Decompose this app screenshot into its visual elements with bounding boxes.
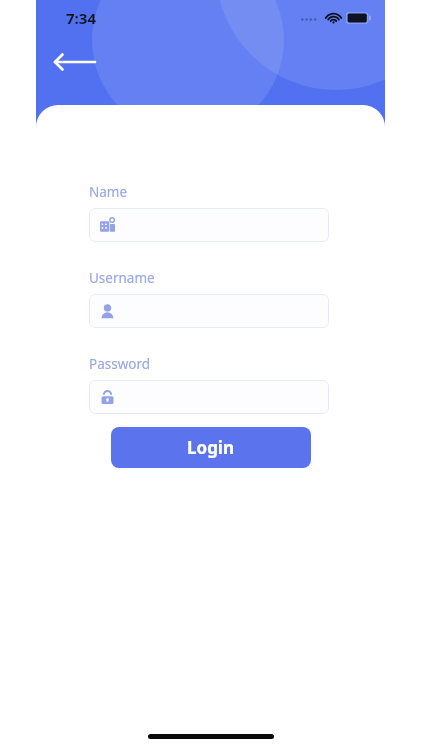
button[interactable] (89, 380, 329, 414)
button[interactable] (89, 208, 329, 242)
staticText: Name (89, 183, 128, 201)
button[interactable] (89, 294, 329, 328)
button[interactable]: Login (111, 427, 311, 468)
staticText: 7:34 (66, 8, 96, 28)
staticText: Password (89, 355, 151, 373)
button[interactable]: Back (48, 44, 100, 80)
staticText: Username (89, 269, 155, 287)
staticText: Login (187, 436, 235, 459)
